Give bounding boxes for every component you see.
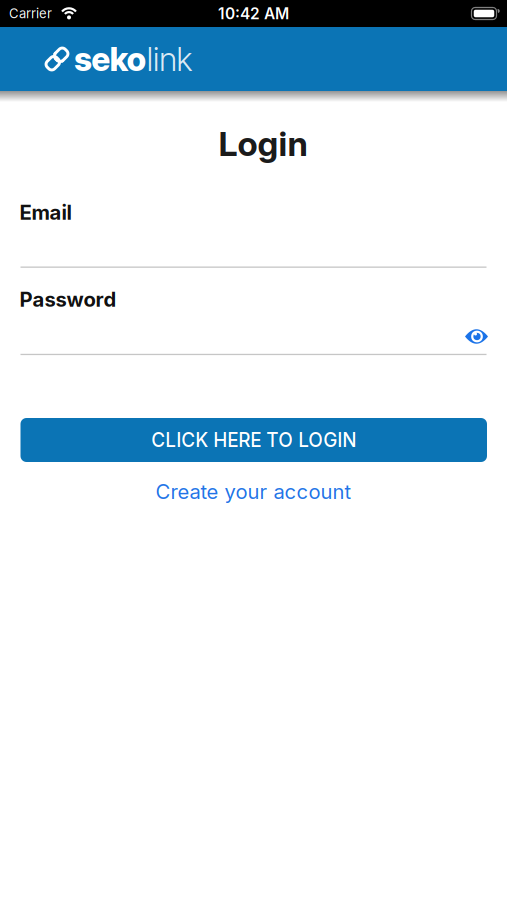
staticText: Password	[19, 287, 116, 311]
button[interactable]: CLICK HERE TO LOGIN	[20, 418, 487, 462]
staticText: Login	[218, 123, 307, 164]
staticText: CLICK HERE TO LOGIN	[151, 428, 356, 451]
staticText: seko	[74, 39, 147, 79]
staticText: Create your account	[155, 479, 351, 504]
staticText: Email	[19, 200, 71, 224]
staticText: Carrier	[9, 6, 52, 21]
button[interactable]: Create your account	[0, 479, 507, 504]
button[interactable]: Show password	[465, 328, 488, 344]
staticText: 10:42 AM	[218, 4, 289, 23]
staticText: link	[147, 39, 192, 79]
